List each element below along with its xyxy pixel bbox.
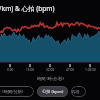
staticText: 心拍 (bpm) [42, 89, 64, 95]
button[interactable]: /km) & 心拍 (bpm) [0, 0, 100, 16]
staticText: 47:00 [66, 68, 75, 72]
button[interactable]: Pace and heart rate chart [0, 16, 100, 64]
staticText: 時間 (時:分:秒) [37, 76, 64, 82]
staticText: 1:03:00 [85, 68, 96, 72]
staticText: /km) & 心拍 (bpm) [0, 4, 55, 13]
button[interactable]: 心拍 (bpm) [37, 86, 68, 97]
staticText: 0:00 [7, 68, 14, 72]
staticText: 気温 (°C) [71, 89, 86, 95]
button[interactable]: ク (時間/分析) [0, 86, 34, 97]
staticText: ク (時間/分析) [0, 89, 24, 95]
button[interactable]: 気温 (°C) [71, 86, 86, 97]
staticText: 32:00 [46, 68, 55, 72]
staticText: 15:00 [26, 68, 35, 72]
